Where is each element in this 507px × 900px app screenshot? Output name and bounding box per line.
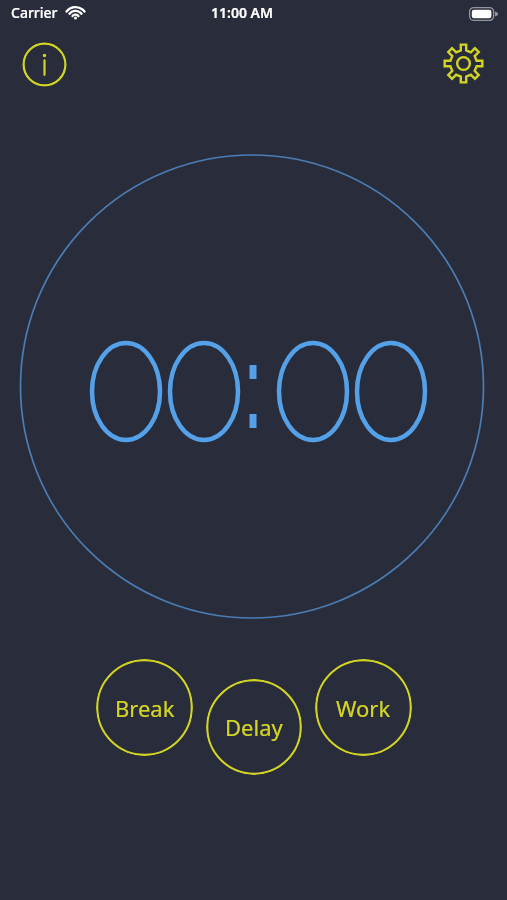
staticText: 11:00 AM (211, 3, 273, 22)
staticText: Delay (225, 712, 283, 742)
staticText: Carrier (11, 3, 58, 22)
staticText: Break (115, 693, 175, 723)
staticText: Work (336, 693, 391, 723)
button[interactable]: Break (96, 659, 193, 756)
button[interactable]: Work (315, 659, 412, 756)
button[interactable]: Delay (206, 679, 302, 775)
button[interactable]: Settings (440, 40, 487, 87)
button[interactable]: Info (22, 42, 67, 87)
